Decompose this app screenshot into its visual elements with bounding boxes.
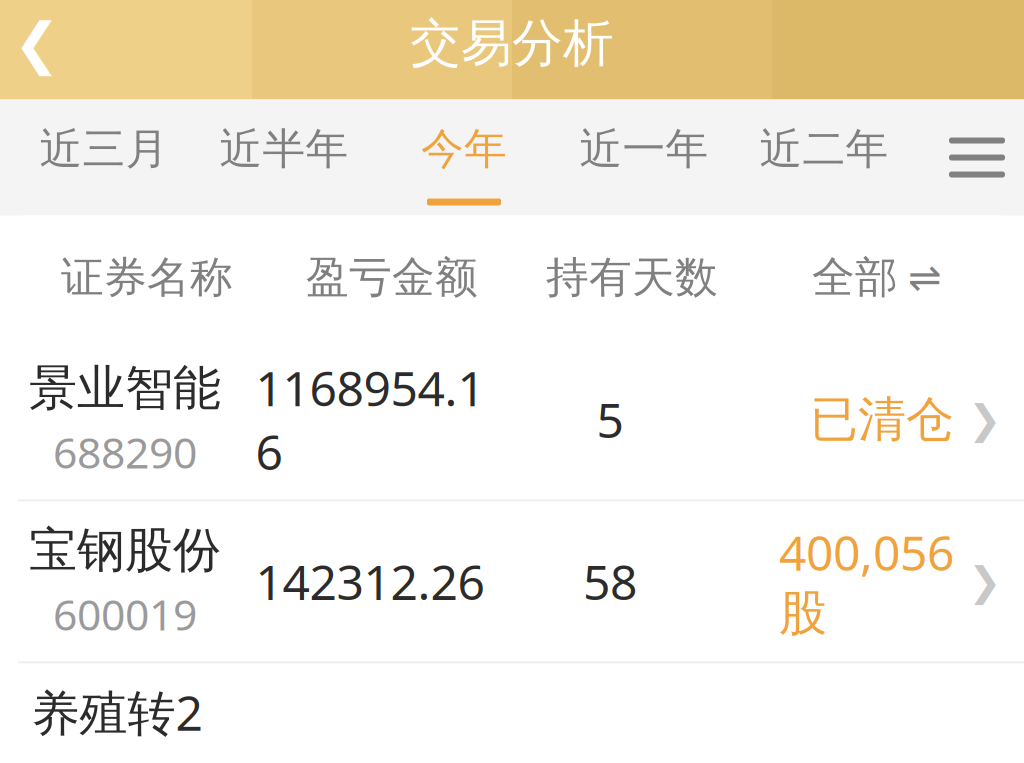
button[interactable]: 宝钢股份 (0, 501, 1024, 663)
staticText: 养殖转2 (31, 680, 202, 744)
button[interactable]: 今年 (374, 99, 554, 215)
staticText: 景业智能 (29, 359, 221, 418)
staticText: ❯ (968, 397, 1002, 442)
staticText: 全部 (812, 251, 898, 304)
staticText: 142312.26 (255, 550, 484, 613)
staticText: 5 (596, 388, 623, 451)
staticText: ⇌ (908, 255, 942, 300)
staticText: 证券名称 (61, 251, 233, 304)
staticText: ❯ (968, 559, 1002, 604)
staticText: 已清仓 (810, 390, 954, 449)
staticText: 600019 (53, 586, 197, 642)
button[interactable]: Menu (922, 99, 1024, 215)
staticText: 近一年 (579, 123, 708, 175)
button[interactable]: 近二年 (734, 99, 914, 215)
button[interactable]: 全部 (752, 237, 1002, 317)
staticText: 近半年 (219, 123, 348, 175)
staticText: 58 (583, 550, 637, 613)
staticText: ❮ (13, 12, 60, 75)
button[interactable]: Back (0, 0, 82, 86)
staticText: 近三月 (39, 123, 168, 175)
staticText: 宝钢股份 (29, 521, 221, 580)
staticText: 400,056股 (779, 520, 954, 643)
button[interactable]: 近半年 (194, 99, 374, 215)
button[interactable]: 近一年 (554, 99, 734, 215)
button[interactable]: 近三月 (14, 99, 194, 215)
staticText: 盈亏金额 (306, 251, 478, 304)
button[interactable]: 景业智能 (0, 339, 1024, 501)
staticText: 近二年 (759, 123, 888, 175)
staticText: 持有天数 (546, 251, 718, 304)
staticText: 1168954.16 (255, 356, 484, 483)
staticText: 688290 (53, 424, 197, 480)
staticText: 今年 (421, 123, 507, 175)
staticText: 交易分析 (410, 12, 614, 75)
